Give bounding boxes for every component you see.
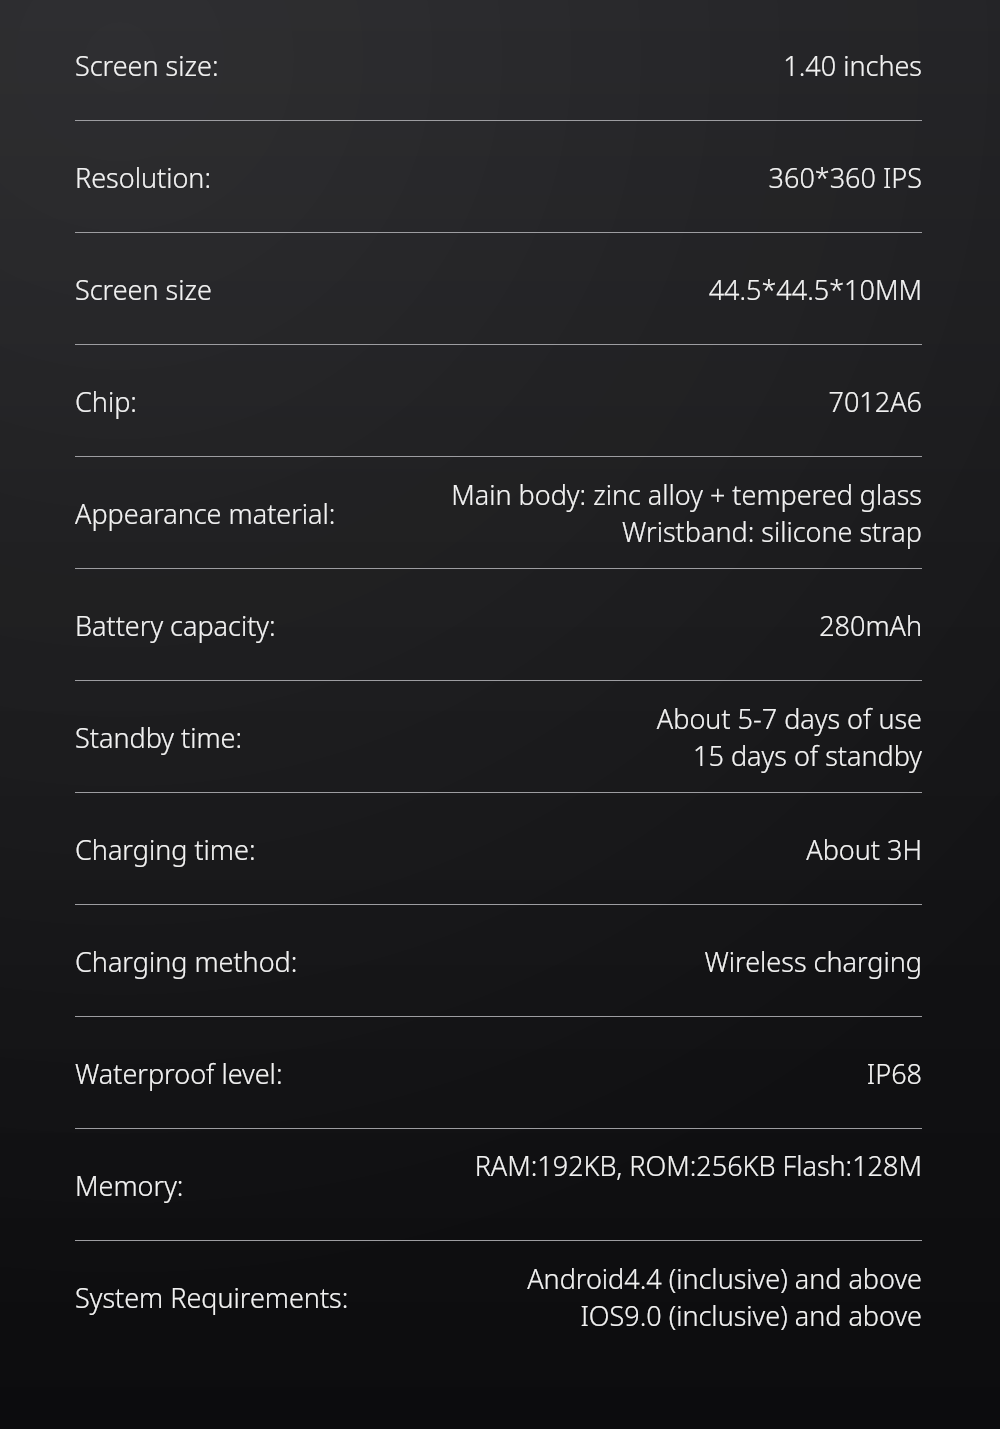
staticText: System Requirements: — [75, 1279, 349, 1316]
button[interactable]: Appearance material: — [0, 457, 1000, 569]
staticText: Chip: — [75, 383, 137, 420]
staticText: 15 days of standby — [693, 737, 922, 774]
staticText: Battery capacity: — [75, 607, 276, 644]
staticText: Wireless charging — [704, 943, 922, 980]
staticText: 280mAh — [819, 607, 922, 644]
button[interactable]: Memory: — [0, 1129, 1000, 1241]
staticText: About 3H — [806, 831, 922, 868]
staticText: Appearance material: — [75, 495, 336, 532]
staticText: IOS9.0 (inclusive) and above — [580, 1297, 922, 1334]
staticText: IP68 — [866, 1055, 922, 1092]
button[interactable]: Waterproof level: — [0, 1017, 1000, 1129]
button[interactable]: Screen size — [0, 233, 1000, 345]
staticText: Screen size — [75, 271, 212, 308]
button[interactable]: Screen size: — [0, 9, 1000, 121]
staticText: 1.40 inches — [783, 47, 922, 84]
staticText: Memory: — [75, 1167, 184, 1204]
staticText: Resolution: — [75, 159, 211, 196]
staticText: RAM:192KB, ROM:256KB Flash:128M — [474, 1147, 922, 1184]
button[interactable]: Resolution: — [0, 121, 1000, 233]
staticText: Standby time: — [75, 719, 242, 756]
staticText: Waterproof level: — [75, 1055, 283, 1092]
staticText: Wristband: silicone strap — [622, 513, 922, 550]
staticText: Charging time: — [75, 831, 256, 868]
staticText: Screen size: — [75, 47, 219, 84]
button[interactable]: Battery capacity: — [0, 569, 1000, 681]
staticText: 44.5*44.5*10MM — [708, 271, 922, 308]
button[interactable]: Standby time: — [0, 681, 1000, 793]
button[interactable]: System Requirements: — [0, 1241, 1000, 1353]
button[interactable]: Charging time: — [0, 793, 1000, 905]
button[interactable]: Charging method: — [0, 905, 1000, 1017]
staticText: 360*360 IPS — [768, 159, 922, 196]
staticText: Android4.4 (inclusive) and above — [527, 1260, 922, 1297]
staticText: Charging method: — [75, 943, 298, 980]
button[interactable]: Chip: — [0, 345, 1000, 457]
staticText: 7012A6 — [828, 383, 922, 420]
staticText: About 5-7 days of use — [656, 700, 922, 737]
staticText: Main body: zinc alloy + tempered glass — [451, 476, 922, 513]
